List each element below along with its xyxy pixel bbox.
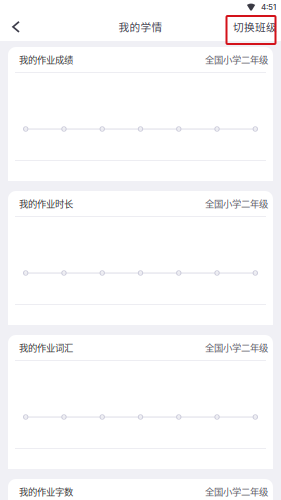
button[interactable]: Back — [6, 15, 26, 38]
staticText: 全国小学二年级 — [205, 197, 268, 210]
staticText: 我的作业时长 — [19, 197, 73, 210]
button[interactable]: 我的作业时长 — [8, 191, 273, 325]
staticText: 我的学情 — [118, 19, 162, 34]
staticText: 我的作业成绩 — [19, 53, 73, 66]
staticText: 全国小学二年级 — [205, 53, 268, 66]
staticText: 切换班级 — [233, 19, 277, 34]
button[interactable]: 我的作业成绩 — [8, 47, 273, 181]
staticText: 我的作业词汇 — [19, 341, 73, 354]
button[interactable]: 我的作业字数 — [8, 479, 273, 500]
button[interactable]: 我的作业词汇 — [8, 335, 273, 469]
staticText: 我的作业字数 — [19, 485, 73, 498]
staticText: 全国小学二年级 — [205, 485, 268, 498]
button[interactable]: 切换班级 — [229, 14, 281, 39]
staticText: 全国小学二年级 — [205, 341, 268, 354]
staticText: 4:51 — [261, 2, 276, 12]
